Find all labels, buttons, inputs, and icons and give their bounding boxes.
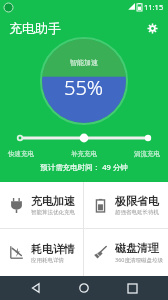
button[interactable]: 耗电详情 <box>0 229 83 276</box>
staticText: 磁盘清理 <box>115 241 159 255</box>
staticText: 耗电详情 <box>31 242 75 256</box>
button[interactable]: 补充充电 <box>71 150 97 158</box>
button[interactable]: 磁盘清理 <box>84 229 168 276</box>
button[interactable]: Recent apps <box>120 276 144 300</box>
button[interactable]: Back <box>24 276 48 300</box>
staticText: 11:15 <box>144 2 164 12</box>
staticText: 智能算法优化充电 <box>31 209 75 216</box>
staticText: 充电助手 <box>9 20 61 36</box>
staticText: 预计需充电时间： 49 分钟 <box>0 162 168 172</box>
button[interactable]: 极限省电 <box>84 182 168 228</box>
staticText: 极限省电 <box>115 194 159 208</box>
button[interactable]: Settings <box>143 19 161 37</box>
button[interactable]: 充电加速 <box>0 182 83 228</box>
staticText: 智能加速 <box>70 58 98 67</box>
button[interactable]: 涓流充电 <box>134 150 160 158</box>
staticText: 55% <box>64 74 104 101</box>
staticText: 充电加速 <box>31 194 75 208</box>
staticText: 应用耗电详情 <box>31 257 64 264</box>
staticText: 超强省电延长待机 <box>115 209 159 216</box>
staticText: 360度清理磁盘垃圾 <box>115 256 163 264</box>
button[interactable]: 快速充电 <box>8 150 34 158</box>
button[interactable]: Home <box>72 276 96 300</box>
